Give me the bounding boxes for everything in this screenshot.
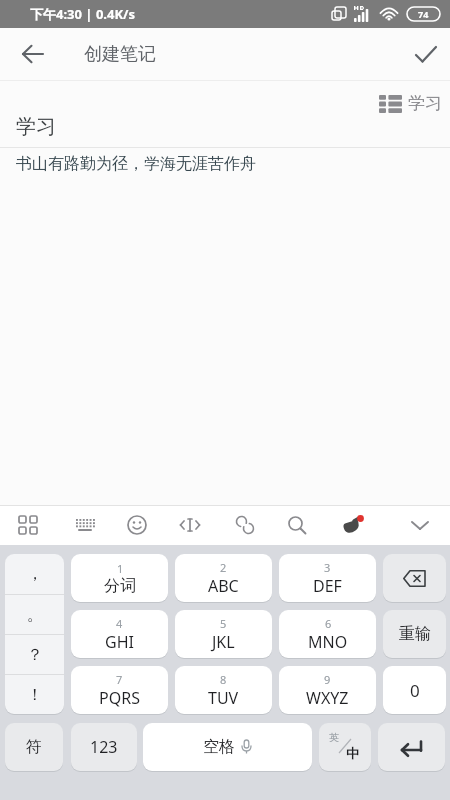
- button[interactable]: 。: [5, 595, 64, 634]
- staticText: 重输: [399, 624, 431, 644]
- button[interactable]: [405, 510, 435, 540]
- button[interactable]: [13, 510, 43, 540]
- button[interactable]: [175, 510, 205, 540]
- button[interactable]: [282, 510, 312, 540]
- button[interactable]: [11, 32, 55, 76]
- button[interactable]: 1: [71, 554, 168, 602]
- button[interactable]: [230, 510, 260, 540]
- staticText: 6: [325, 616, 332, 631]
- staticText: JKL: [212, 631, 235, 653]
- staticText: 1: [117, 561, 124, 576]
- button[interactable]: ！: [5, 675, 64, 714]
- button[interactable]: 3: [279, 554, 376, 602]
- button[interactable]: 6: [279, 610, 376, 658]
- button[interactable]: 重输: [383, 610, 446, 658]
- button[interactable]: [337, 510, 367, 540]
- button[interactable]: ？: [5, 635, 64, 674]
- button[interactable]: 0: [383, 666, 446, 714]
- staticText: 4: [116, 616, 123, 631]
- staticText: MNO: [308, 631, 348, 653]
- staticText: 8: [220, 672, 227, 687]
- staticText: WXYZ: [306, 687, 349, 709]
- staticText: 5: [220, 616, 227, 631]
- staticText: DEF: [313, 575, 342, 597]
- button[interactable]: [383, 554, 446, 602]
- staticText: 74: [418, 8, 429, 20]
- button[interactable]: 4: [71, 610, 168, 658]
- button[interactable]: 符: [5, 723, 63, 771]
- button[interactable]: 英: [319, 723, 371, 771]
- staticText: 0: [410, 679, 420, 702]
- staticText: 书山有路勤为径，学海无涯苦作舟: [16, 154, 256, 174]
- staticText: 空格: [203, 737, 235, 757]
- staticText: 学习: [16, 114, 56, 139]
- staticText: 3: [324, 560, 331, 575]
- button[interactable]: [70, 510, 100, 540]
- staticText: ！: [27, 685, 43, 705]
- button[interactable]: [378, 723, 445, 771]
- button[interactable]: 123: [71, 723, 137, 771]
- staticText: ABC: [208, 575, 239, 597]
- staticText: 符: [26, 737, 42, 757]
- button[interactable]: 8: [175, 666, 272, 714]
- staticText: 英: [329, 731, 339, 744]
- staticText: 创建笔记: [84, 43, 156, 66]
- button[interactable]: 9: [279, 666, 376, 714]
- button[interactable]: ，: [5, 554, 64, 594]
- staticText: 2: [220, 560, 227, 575]
- staticText: 学习: [408, 93, 442, 114]
- staticText: 分词: [104, 576, 136, 596]
- staticText: 中: [346, 745, 359, 761]
- staticText: 123: [90, 736, 118, 758]
- staticText: 下午4:30 | 0.4K/s: [30, 5, 135, 23]
- button[interactable]: 7: [71, 666, 168, 714]
- staticText: ？: [27, 645, 43, 665]
- button[interactable]: 5: [175, 610, 272, 658]
- staticText: 9: [324, 672, 331, 687]
- staticText: 。: [27, 605, 43, 625]
- staticText: 7: [116, 672, 123, 687]
- staticText: GHI: [105, 631, 134, 653]
- staticText: PQRS: [99, 687, 140, 709]
- button[interactable]: 2: [175, 554, 272, 602]
- button[interactable]: 空格: [143, 723, 312, 771]
- staticText: ，: [27, 564, 43, 584]
- button[interactable]: [122, 510, 152, 540]
- button[interactable]: [402, 30, 450, 78]
- staticText: TUV: [208, 687, 239, 709]
